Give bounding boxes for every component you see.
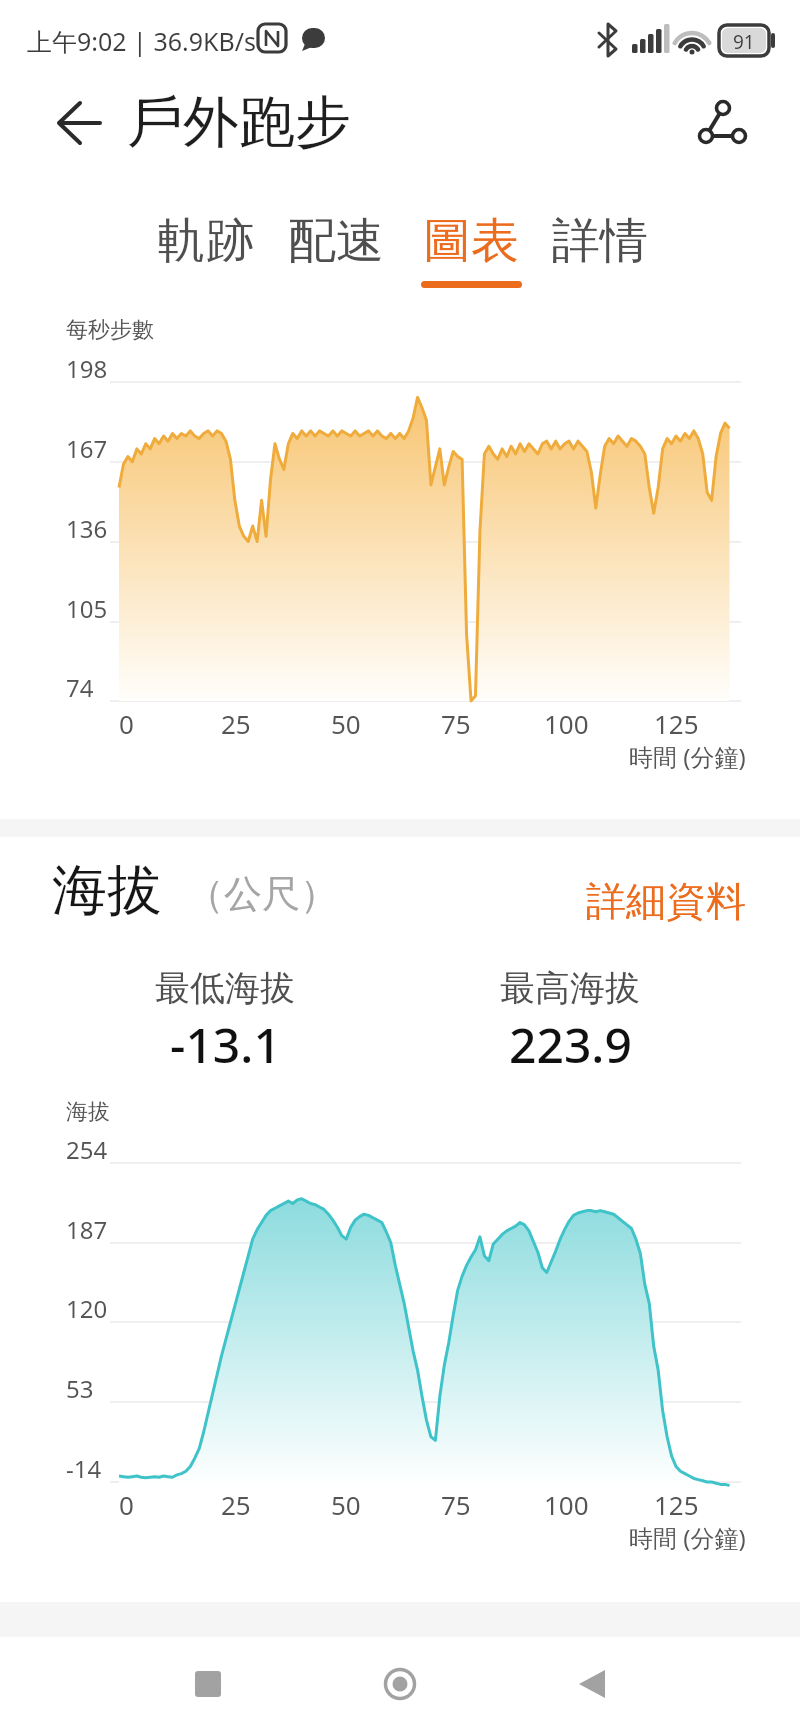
staticText: 50 [331,1487,361,1522]
button[interactable]: 軌跡 [141,211,271,271]
staticText: 198 [66,352,108,385]
staticText: 167 [66,432,108,465]
button[interactable]: 配速 [271,211,401,271]
button[interactable] [170,1655,245,1715]
staticText: 最低海拔 [155,966,295,1010]
staticText: 每秒步數 [66,316,154,344]
staticText: 120 [66,1292,108,1325]
staticText: 詳細資料 [586,876,746,926]
staticText: 0 [119,706,134,741]
button[interactable]: 詳細資料 [506,876,746,926]
staticText: 75 [441,706,471,741]
staticText: 125 [654,1487,699,1522]
staticText: 25 [221,706,251,741]
staticText: -14 [66,1452,102,1485]
button[interactable]: 圖表 [406,211,536,271]
staticText: 105 [66,592,108,625]
staticText: 海拔 [52,856,162,925]
staticText: 時間 (分鐘) [629,1521,746,1554]
staticText: 25 [221,1487,251,1522]
button[interactable]: 詳情 [535,211,665,271]
staticText: 配速 [288,211,384,271]
staticText: 時間 (分鐘) [629,740,746,773]
staticText: 100 [544,706,589,741]
staticText: 91 [733,29,755,55]
staticText: 戶外跑步 [127,87,351,158]
staticText: 136 [66,512,108,545]
staticText: 125 [654,706,699,741]
button[interactable] [685,90,760,160]
staticText: 254 [66,1133,108,1166]
staticText: 100 [544,1487,589,1522]
staticText: 詳情 [552,211,648,271]
staticText: 圖表 [423,211,519,271]
button[interactable] [363,1655,438,1715]
button[interactable] [40,88,115,158]
staticText: 軌跡 [158,211,254,271]
staticText: 75 [441,1487,471,1522]
staticText: 187 [66,1213,108,1246]
staticText: 223.9 [509,1012,632,1077]
staticText: 海拔 [66,1098,110,1126]
staticText: （公尺） [186,870,338,918]
staticText: 53 [66,1372,94,1405]
staticText: 上午9:02 | 36.9KB/s [27,24,256,58]
staticText: 0 [119,1487,134,1522]
staticText: -13.1 [170,1012,281,1077]
staticText: 74 [66,671,94,704]
staticText: 最高海拔 [500,966,640,1010]
button[interactable] [558,1655,633,1715]
staticText: 50 [331,706,361,741]
